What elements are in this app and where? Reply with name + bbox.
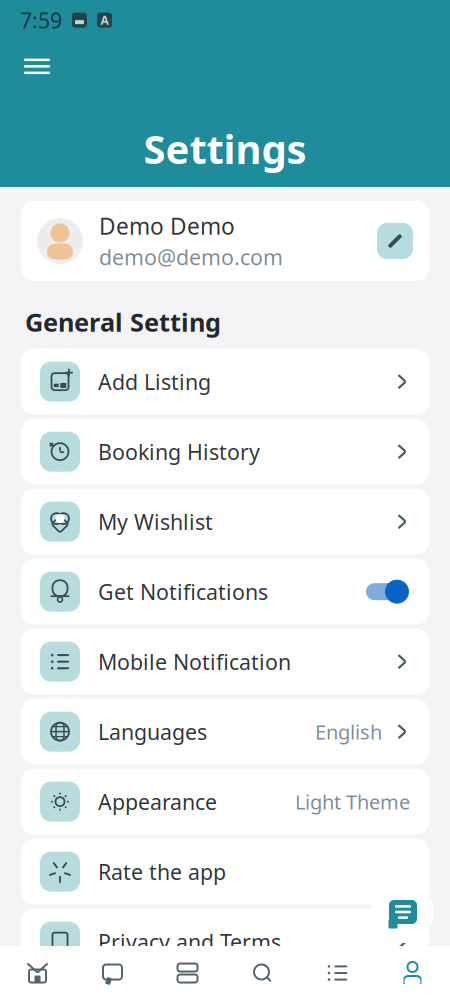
staticText: Get Notifications — [98, 577, 268, 606]
button[interactable]: Home — [0, 946, 75, 1000]
button[interactable]: Profile — [375, 946, 450, 1000]
staticText: Mobile Notification — [98, 647, 291, 676]
staticText: My Wishlist — [98, 507, 213, 536]
staticText: Booking History — [98, 437, 260, 466]
staticText: Languages — [98, 717, 207, 746]
button[interactable]: Chat — [372, 881, 434, 943]
staticText: Add Listing — [98, 367, 211, 396]
button[interactable]: Rate the app — [21, 839, 429, 905]
button[interactable]: Privacy and Terms — [21, 909, 429, 975]
button[interactable]: Search — [225, 946, 300, 1000]
button[interactable]: Mobile Notification — [21, 629, 429, 695]
button[interactable]: Appearance — [21, 769, 429, 835]
staticText: A — [100, 12, 108, 28]
button[interactable]: Menu — [12, 46, 62, 86]
staticText: Settings — [143, 122, 306, 175]
staticText: English — [315, 718, 382, 745]
button[interactable]: Get Notifications — [21, 559, 429, 625]
staticText: Rate the app — [98, 857, 226, 886]
button[interactable]: Categories — [300, 946, 375, 1000]
staticText: General Setting — [25, 305, 221, 339]
button[interactable]: Messages — [75, 946, 150, 1000]
staticText: Privacy and Terms — [98, 927, 281, 956]
staticText: Demo Demo — [99, 211, 235, 241]
button[interactable]: Demo Demo — [21, 201, 429, 281]
button[interactable]: Listings — [150, 946, 225, 1000]
button[interactable]: Languages — [21, 699, 429, 765]
staticText: demo@demo.com — [99, 243, 283, 271]
staticText: Light Theme — [295, 788, 410, 815]
staticText: 7:59 — [20, 6, 62, 34]
button[interactable]: Add Listing — [21, 349, 429, 415]
button[interactable]: Booking History — [21, 419, 429, 485]
staticText: Appearance — [98, 787, 217, 816]
button[interactable]: My Wishlist — [21, 489, 429, 555]
